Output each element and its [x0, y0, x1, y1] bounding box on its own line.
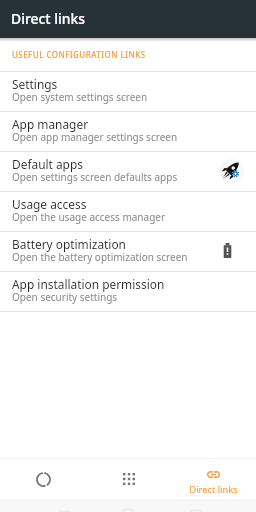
staticText: Settings — [12, 76, 58, 92]
staticText: Open settings screen defaults apps — [12, 170, 178, 184]
staticText: Default apps — [12, 156, 83, 172]
staticText: Usage access — [12, 196, 87, 212]
staticText: App installation permission — [12, 276, 165, 292]
staticText: Battery optimization — [12, 236, 126, 252]
staticText: Open the battery optimization screen — [12, 250, 188, 264]
button[interactable]: App installation permission — [0, 272, 256, 311]
staticText: Open the usage access manager — [12, 210, 166, 224]
staticText: Open system settings screen — [12, 90, 148, 104]
button[interactable]: Rotation — [0, 459, 86, 499]
button[interactable]: Settings — [0, 72, 256, 111]
button[interactable]: Default apps — [0, 152, 256, 191]
staticText: Direct links — [11, 9, 85, 28]
button[interactable]: Usage access — [0, 192, 256, 231]
button[interactable]: App manager — [0, 112, 256, 151]
staticText: Open app manager settings screen — [12, 130, 178, 144]
staticText: USEFUL CONFIGURATION LINKS — [12, 49, 146, 60]
button[interactable]: Direct links — [171, 459, 256, 499]
staticText: Direct links — [189, 483, 238, 496]
staticText: App manager — [12, 116, 89, 132]
staticText: Open security settings — [12, 290, 118, 304]
button[interactable]: Battery optimization — [0, 232, 256, 271]
button[interactable]: Apps — [86, 459, 171, 499]
